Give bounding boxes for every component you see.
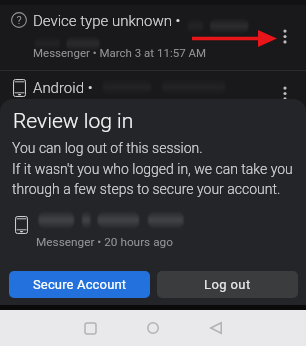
button[interactable]: Log out (157, 271, 298, 298)
button[interactable]: More options (274, 82, 296, 104)
staticText: Messenger • 20 hours ago (36, 235, 173, 249)
button[interactable]: Android • (0, 73, 306, 111)
button[interactable]: ? (0, 5, 306, 69)
staticText: Device type unknown • (33, 12, 181, 30)
button[interactable]: More options (274, 25, 296, 47)
staticText: Review log in (13, 109, 134, 134)
staticText: Messenger • March 3 at 11:57 AM (33, 46, 207, 59)
staticText: ? (16, 14, 22, 27)
button[interactable]: Recents (68, 310, 112, 346)
staticText: Android • (33, 79, 93, 97)
staticText: If it wasn't you who logged in, we can t… (12, 161, 293, 197)
button[interactable]: Home (131, 310, 175, 346)
button[interactable]: Secure Account (9, 271, 150, 298)
staticText: You can log out of this session. (12, 140, 203, 156)
staticText: Log out (204, 277, 251, 292)
button[interactable]: Back (194, 310, 238, 346)
staticText: Secure Account (33, 277, 127, 292)
